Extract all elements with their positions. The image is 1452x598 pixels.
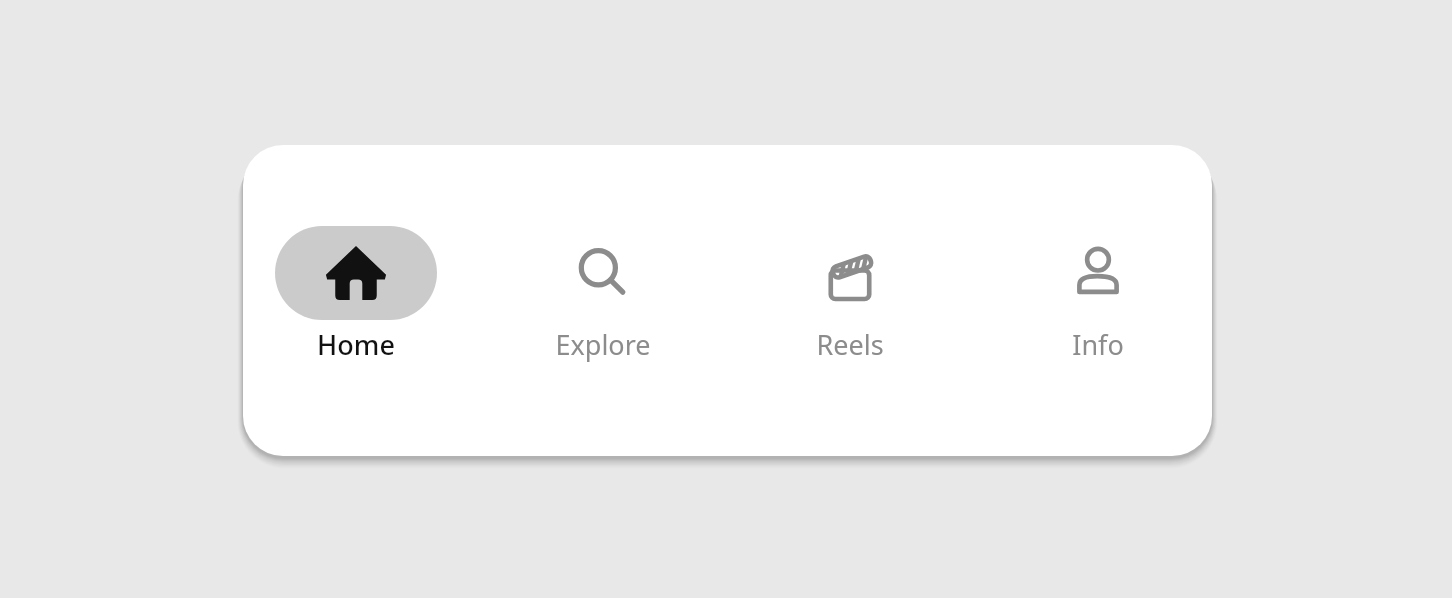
staticText: Reels: [769, 326, 931, 363]
button[interactable]: Info: [1017, 226, 1179, 363]
button[interactable]: Reels: [769, 226, 931, 363]
staticText: Explore: [522, 326, 684, 363]
staticText: Info: [1017, 326, 1179, 363]
button[interactable]: Home: [275, 226, 437, 363]
button[interactable]: Explore: [522, 226, 684, 363]
staticText: Home: [275, 326, 437, 363]
